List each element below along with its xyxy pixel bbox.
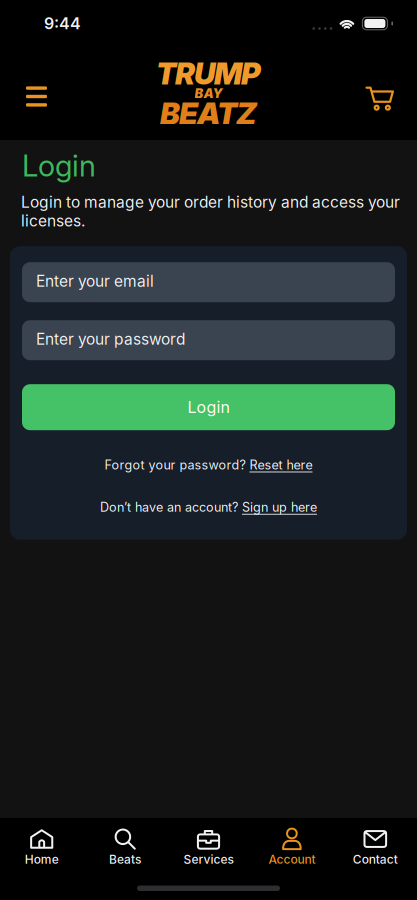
button[interactable]: Beats — [83, 828, 167, 866]
button[interactable]: Enter your email — [22, 262, 395, 302]
staticText: TRUMP — [156, 55, 261, 92]
staticText: Enter your email — [36, 272, 154, 291]
staticText: Don’t have an account? Sign up here — [100, 499, 317, 515]
staticText: Login to manage your order history and a… — [21, 193, 400, 230]
staticText: Contact — [353, 852, 398, 866]
staticText: BEATZ — [160, 95, 257, 132]
staticText: Forgot your password? Reset here — [104, 457, 312, 472]
button[interactable]: Contact — [334, 828, 417, 866]
button[interactable]: Cart — [366, 80, 417, 107]
staticText: Enter your password — [36, 330, 185, 349]
button[interactable]: Don’t have an account? Sign up here — [100, 499, 317, 515]
staticText: Home — [25, 852, 59, 866]
staticText: Beats — [109, 852, 141, 866]
staticText: Services — [183, 852, 233, 866]
button[interactable]: Login — [22, 384, 395, 430]
staticText: Login — [22, 148, 96, 184]
button[interactable]: Services — [167, 828, 250, 866]
staticText: 9:44 — [44, 14, 81, 33]
staticText: Login — [187, 397, 229, 417]
button[interactable]: Forgot your password? Reset here — [104, 457, 312, 472]
button[interactable]: Menu — [0, 83, 47, 104]
button[interactable]: Enter your password — [22, 320, 395, 360]
button[interactable]: Account — [250, 828, 334, 866]
staticText: BAY — [194, 86, 222, 101]
staticText: Account — [268, 852, 315, 866]
button[interactable]: Home — [0, 828, 83, 866]
